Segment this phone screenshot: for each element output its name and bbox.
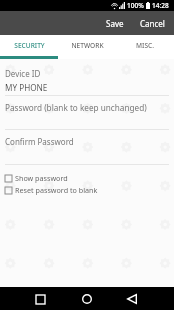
button[interactable]: Recents: [30, 289, 50, 309]
staticText: Confirm Password: [5, 136, 74, 147]
staticText: SECURITY: [14, 41, 45, 50]
staticText: MY PHONE: [5, 82, 48, 93]
staticText: 14:28: [152, 1, 169, 10]
button[interactable]: MISC.: [116, 35, 174, 59]
staticText: Reset password to blank: [15, 185, 98, 195]
button[interactable]: Back: [122, 289, 142, 309]
staticText: NETWORK: [71, 41, 104, 50]
staticText: Device ID: [5, 68, 41, 79]
button[interactable]: Save: [98, 13, 132, 34]
button[interactable]: Reset password to blank: [5, 184, 169, 196]
staticText: Cancel: [140, 18, 165, 29]
button[interactable]: Show password: [5, 172, 169, 184]
staticText: 100%: [127, 1, 144, 10]
staticText: MISC.: [136, 41, 154, 50]
button[interactable]: Cancel: [132, 13, 174, 34]
staticText: Password (blank to keep unchanged): [5, 102, 147, 113]
button[interactable]: Home: [77, 289, 97, 309]
staticText: Show password: [15, 173, 68, 183]
staticText: Save: [106, 18, 124, 29]
button[interactable]: SECURITY: [0, 35, 58, 59]
button[interactable]: NETWORK: [58, 35, 116, 59]
